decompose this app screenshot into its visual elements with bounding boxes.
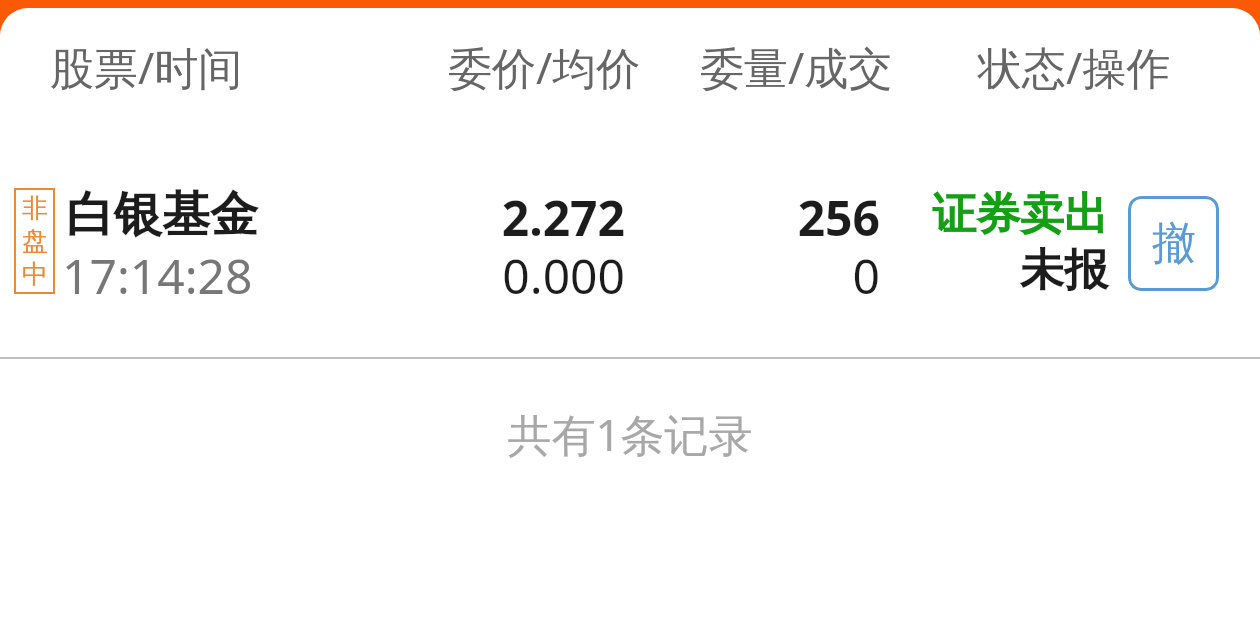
staticText: 盘	[22, 225, 48, 258]
staticText: 白银基金	[66, 185, 258, 245]
staticText: 0	[640, 243, 880, 308]
staticText: 0.000	[325, 243, 625, 308]
staticText: 中	[22, 258, 48, 290]
staticText: 未报	[888, 243, 1108, 298]
button[interactable]: 撤单	[1128, 196, 1219, 291]
staticText: 撤	[1152, 216, 1196, 271]
button[interactable]: 非	[0, 130, 1260, 357]
staticText: 共有1条记录	[0, 404, 1260, 464]
staticText: 股票/时间	[50, 37, 243, 97]
staticText: 证券卖出	[888, 187, 1108, 242]
staticText: 17:14:28	[62, 243, 253, 308]
staticText: 2.272	[325, 185, 625, 250]
staticText: 非	[22, 192, 48, 225]
staticText: 委量/成交	[700, 37, 893, 97]
staticText: 256	[640, 185, 880, 250]
staticText: 状态/操作	[978, 37, 1171, 97]
staticText: 委价/均价	[448, 37, 641, 97]
